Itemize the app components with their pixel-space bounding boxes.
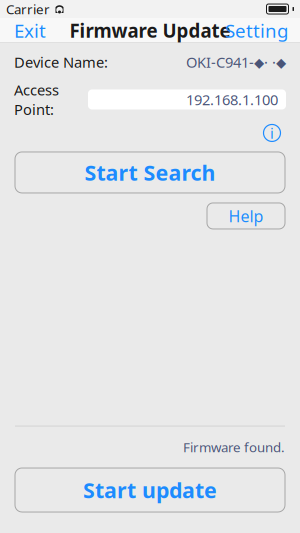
button[interactable]: Setting [213,18,300,43]
staticText: Device Name: [14,52,108,72]
button[interactable]: Start Search [15,152,285,193]
staticText: Firmware found. [183,438,285,456]
staticText: Setting [225,18,288,43]
staticText: Carrier [6,0,50,18]
staticText: 192.168.1.100 [186,90,278,109]
button[interactable]: Exit [0,18,60,43]
staticText: Exit [14,18,46,43]
staticText: OKI-C941-⬥· ·⬥ [186,52,286,72]
button[interactable]: Start update [15,468,285,512]
staticText: Start update [83,476,217,504]
staticText: Access Point: [14,80,59,119]
staticText: Help [228,205,263,226]
button[interactable]: Help [207,203,285,229]
staticText: i [270,123,274,143]
staticText: Start Search [84,158,215,187]
button[interactable]: Information [260,121,284,145]
staticText: Firmware Update [69,18,230,43]
